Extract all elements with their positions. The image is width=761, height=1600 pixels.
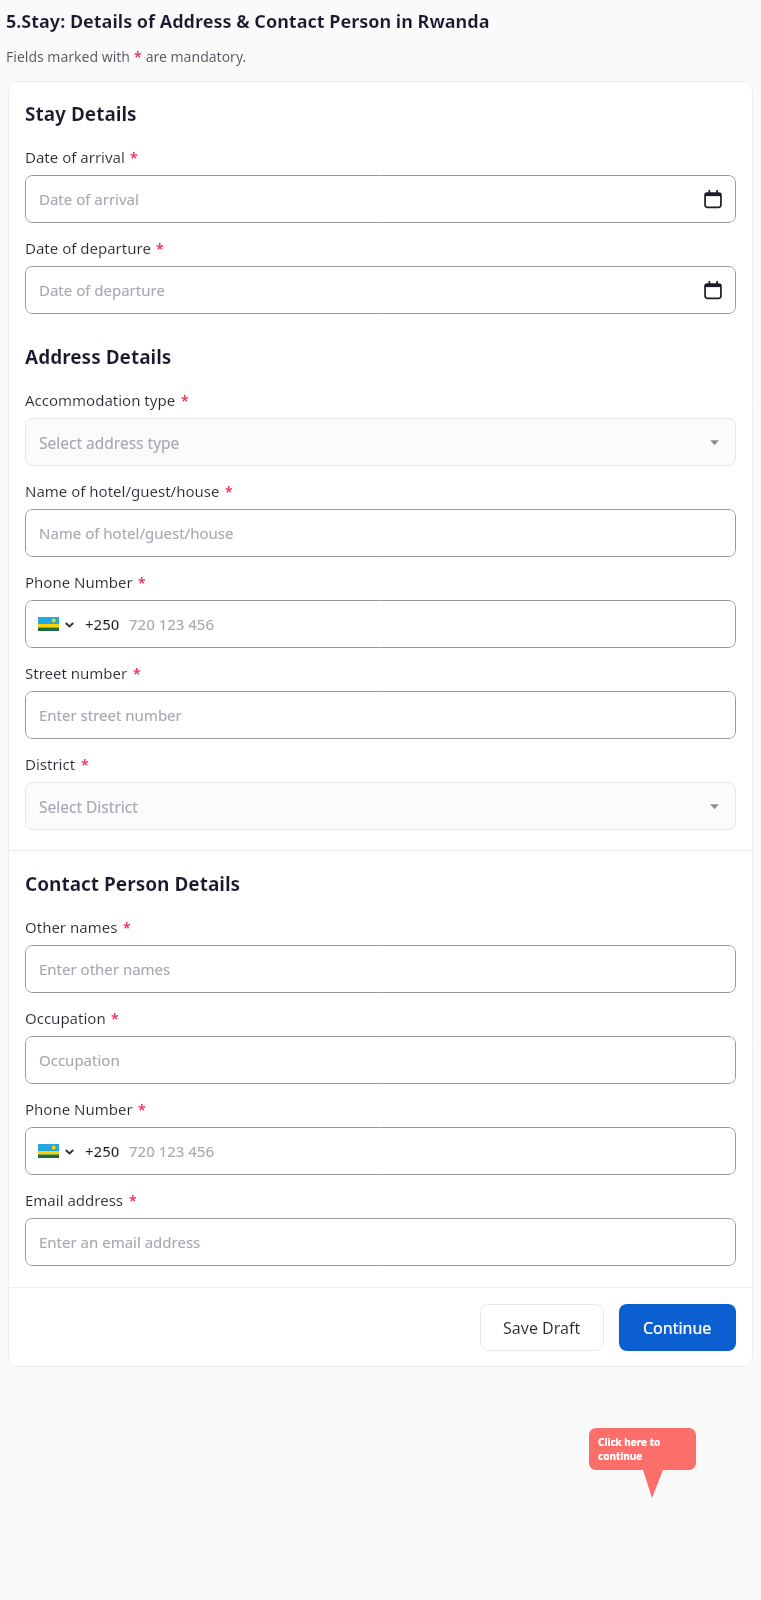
button[interactable]: Enter an email address xyxy=(25,1218,736,1266)
staticText: * xyxy=(138,573,146,592)
staticText: Name of hotel/guest/house xyxy=(25,481,220,501)
staticText: * xyxy=(225,482,233,501)
staticText: * xyxy=(134,47,142,66)
staticText: Date of arrival xyxy=(39,189,704,209)
staticText: 5.Stay: Details of Address & Contact Per… xyxy=(6,9,490,34)
staticText: * xyxy=(130,148,138,167)
staticText: Contact Person Details xyxy=(25,871,241,897)
staticText: Click here to continue xyxy=(598,1435,661,1463)
staticText: Address Details xyxy=(25,344,172,370)
other: Pick a date xyxy=(704,281,722,299)
staticText: Occupation xyxy=(25,1008,106,1028)
staticText: Phone Number xyxy=(25,1099,133,1119)
staticText: District xyxy=(25,754,76,774)
button[interactable]: Occupation xyxy=(25,1036,736,1084)
staticText: Select District xyxy=(39,796,709,817)
button[interactable]: Select District xyxy=(25,782,736,830)
button[interactable]: Select address type xyxy=(25,418,736,466)
staticText: +250 xyxy=(85,614,120,634)
staticText: 720 123 456 xyxy=(129,1141,215,1161)
staticText: Enter an email address xyxy=(39,1232,201,1252)
staticText: Date of departure xyxy=(39,280,704,300)
staticText: Accommodation type xyxy=(25,390,176,410)
staticText: * xyxy=(138,1100,146,1119)
staticText: +250 xyxy=(85,1141,120,1161)
staticText: Fields marked with xyxy=(6,47,134,66)
staticText: are mandatory. xyxy=(142,47,247,66)
staticText: * xyxy=(123,918,131,937)
staticText: * xyxy=(129,1191,137,1210)
button[interactable]: Save Draft xyxy=(480,1304,604,1351)
staticText: Stay Details xyxy=(25,101,137,127)
staticText: Date of departure xyxy=(25,238,151,258)
staticText: Enter other names xyxy=(39,959,171,979)
button[interactable]: Date of arrival xyxy=(25,175,736,223)
staticText: Street number xyxy=(25,663,128,683)
staticText: Phone Number xyxy=(25,572,133,592)
staticText: Save Draft xyxy=(503,1317,581,1339)
staticText: Select address type xyxy=(39,432,709,453)
staticText: * xyxy=(181,391,189,410)
staticText: Name of hotel/guest/house xyxy=(39,523,234,543)
button[interactable]: Date of departure xyxy=(25,266,736,314)
button[interactable]: Continue xyxy=(619,1304,736,1351)
button[interactable]: Enter street number xyxy=(25,691,736,739)
staticText: Email address xyxy=(25,1190,124,1210)
other: Pick a date xyxy=(704,190,722,208)
staticText: Other names xyxy=(25,917,118,937)
button[interactable]: Enter other names xyxy=(25,945,736,993)
staticText: 720 123 456 xyxy=(129,614,215,634)
staticText: * xyxy=(156,239,164,258)
staticText: Date of arrival xyxy=(25,147,125,167)
staticText: * xyxy=(133,664,141,683)
staticText: Continue xyxy=(643,1317,712,1339)
staticText: * xyxy=(111,1009,119,1028)
staticText: * xyxy=(81,755,89,774)
staticText: Occupation xyxy=(39,1050,120,1070)
staticText: Enter street number xyxy=(39,705,182,725)
button[interactable]: Name of hotel/guest/house xyxy=(25,509,736,557)
button[interactable]: +250 xyxy=(25,600,736,648)
button[interactable]: +250 xyxy=(25,1127,736,1175)
